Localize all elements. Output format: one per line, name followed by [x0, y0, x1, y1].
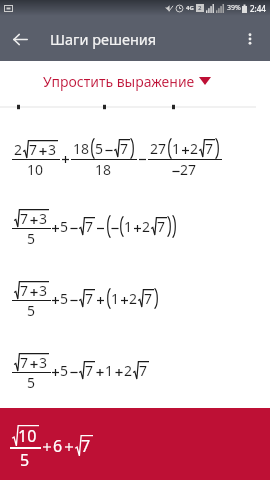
staticText: 4G — [186, 4, 194, 12]
staticText: 7 — [144, 289, 153, 308]
staticText: 18 — [73, 139, 90, 158]
staticText: 3 — [39, 353, 48, 372]
staticText: 2 — [142, 217, 151, 236]
staticText: 7 — [205, 139, 214, 158]
staticText: 2 — [190, 139, 199, 158]
staticText: 2 — [129, 289, 138, 308]
staticText: 7 — [20, 353, 29, 372]
staticText: 7 — [139, 361, 148, 380]
staticText: 7 — [20, 209, 29, 228]
staticText: 1 — [172, 139, 181, 158]
staticText: 7 — [120, 139, 129, 158]
staticText: 5 — [95, 139, 104, 158]
staticText: 6 — [53, 435, 63, 457]
staticText: 5 — [60, 289, 69, 308]
staticText: 2 — [198, 4, 202, 12]
staticText: 10 — [27, 160, 44, 179]
staticText: 2:44 — [250, 3, 266, 14]
staticText: 5 — [60, 217, 69, 236]
staticText: 2 — [124, 361, 133, 380]
staticText: 7 — [20, 281, 29, 300]
staticText: 5 — [20, 449, 30, 471]
staticText: 7 — [157, 217, 166, 236]
staticText: 3 — [39, 209, 48, 228]
button[interactable]: More options — [230, 19, 270, 59]
staticText: 1 — [105, 361, 114, 380]
staticText: Упростить выражение — [43, 72, 195, 91]
staticText: 27 — [150, 139, 167, 158]
staticText: 5 — [60, 361, 69, 380]
staticText: 7 — [29, 140, 38, 159]
staticText: 5 — [27, 229, 36, 248]
staticText: 7 — [85, 289, 94, 308]
staticText: 5 — [27, 301, 36, 320]
staticText: 7 — [85, 217, 94, 236]
staticText: 7 — [81, 435, 91, 457]
staticText: Шаги решения — [50, 29, 157, 49]
staticText: 10 — [18, 425, 37, 447]
staticText: 2 — [14, 140, 23, 159]
staticText: 3 — [48, 140, 57, 159]
staticText: 7 — [85, 361, 94, 380]
staticText: 3 — [39, 281, 48, 300]
button[interactable]: Упростить выражение — [43, 68, 211, 94]
staticText: 1 — [111, 289, 120, 308]
staticText: 39% — [227, 3, 241, 13]
button[interactable]: Back — [0, 19, 40, 59]
staticText: 5 — [27, 373, 36, 392]
staticText: 1 — [124, 217, 133, 236]
staticText: 18 — [95, 160, 112, 179]
staticText: 27 — [180, 160, 197, 179]
